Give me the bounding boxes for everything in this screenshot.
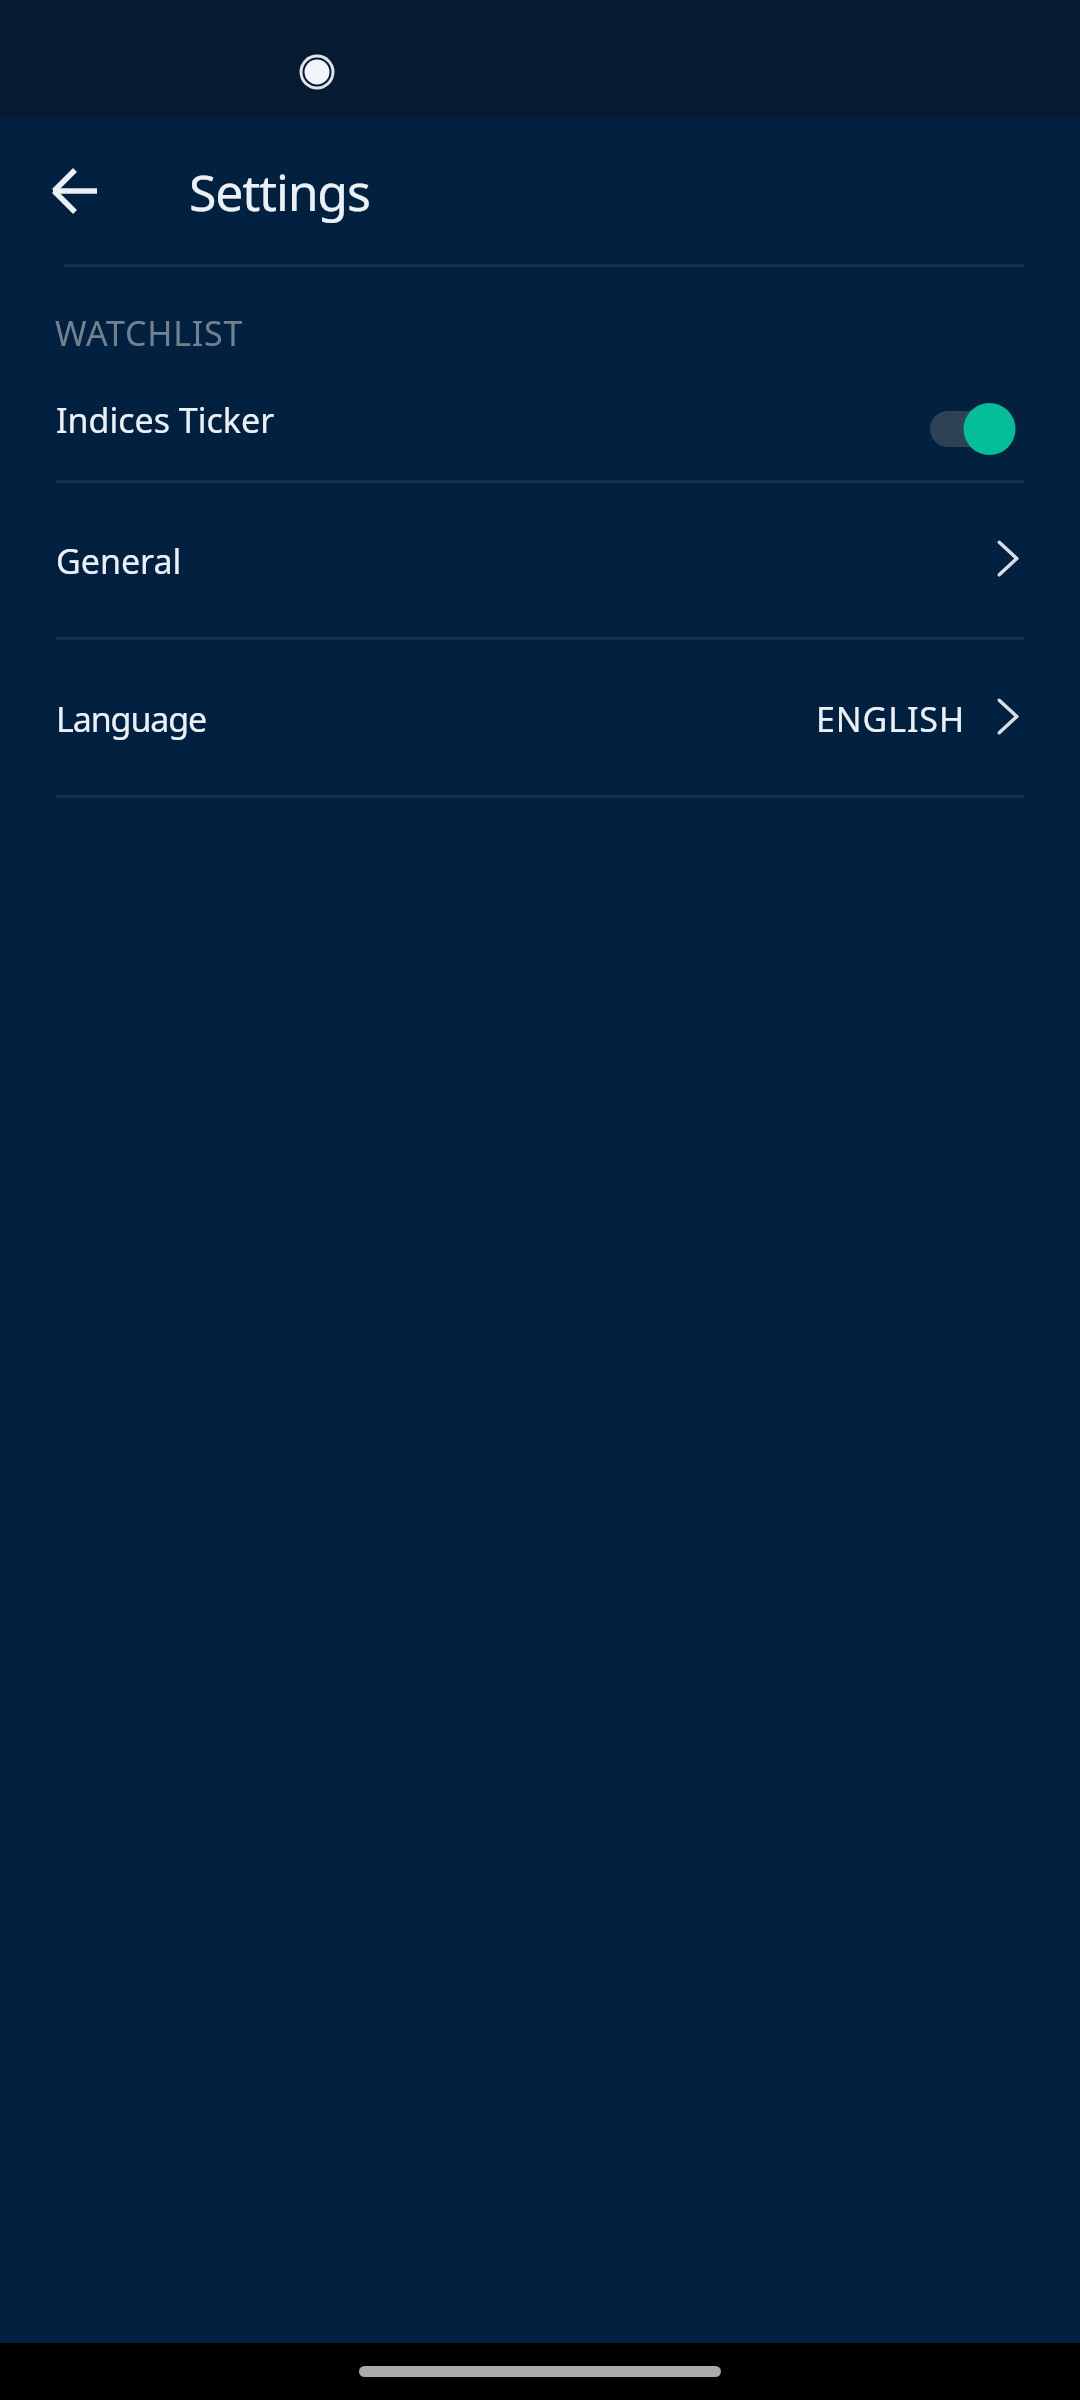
- staticText: ENGLISH: [816, 696, 965, 742]
- button[interactable]: Indices Ticker toggle, on: [930, 401, 1016, 457]
- button[interactable]: Language: [0, 666, 1080, 771]
- button[interactable]: General: [0, 507, 1080, 614]
- staticText: Settings: [189, 158, 370, 226]
- staticText: WATCHLIST: [55, 310, 244, 356]
- staticText: Indices Ticker: [56, 397, 275, 443]
- button[interactable]: Back: [27, 143, 123, 239]
- staticText: General: [56, 538, 182, 584]
- button[interactable]: Indices Ticker: [0, 368, 1080, 472]
- staticText: Language: [56, 696, 207, 742]
